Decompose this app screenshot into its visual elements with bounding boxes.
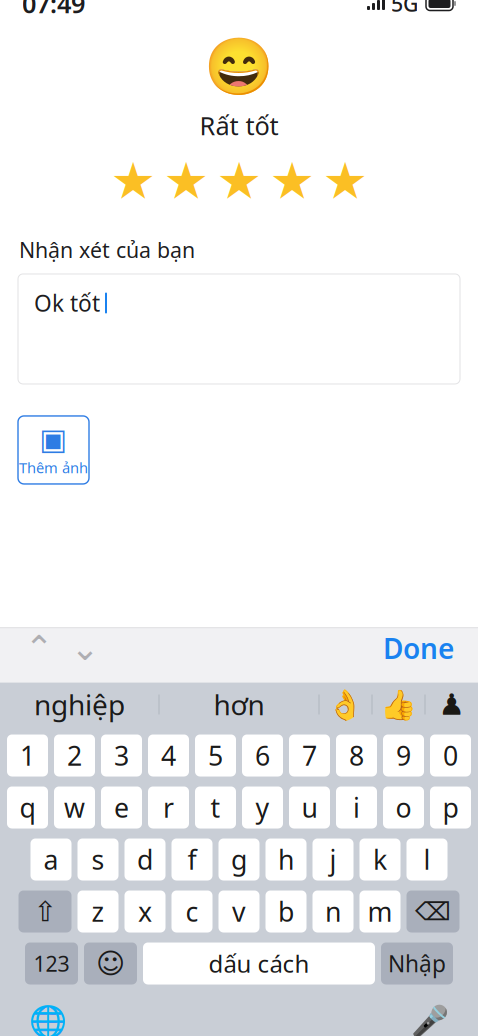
button[interactable]: k [359, 838, 400, 880]
button[interactable]: 👌 [319, 682, 371, 726]
button[interactable]: f [171, 838, 212, 880]
button[interactable]: 123 [25, 942, 78, 984]
button[interactable]: hơn [159, 682, 318, 726]
staticText: Thêm ảnh [19, 458, 88, 477]
button[interactable]: 0 [430, 734, 471, 776]
button[interactable]: q [7, 786, 48, 828]
staticText: 5 [208, 738, 223, 773]
button[interactable]: 8 [336, 734, 377, 776]
button[interactable]: j [312, 838, 353, 880]
staticText: Rất tốt [199, 108, 278, 142]
staticText: j [329, 842, 336, 877]
staticText: z [91, 894, 104, 929]
staticText: q [19, 790, 35, 825]
staticText: 5G [391, 0, 419, 18]
staticText: m [367, 894, 392, 929]
button[interactable]: 7 [289, 734, 330, 776]
staticText: ♟ [438, 688, 464, 721]
button[interactable]: Dictation [408, 1001, 452, 1036]
staticText: y [255, 790, 269, 825]
button[interactable]: 5 [195, 734, 236, 776]
button[interactable]: b [265, 890, 306, 932]
button[interactable]: 2 [54, 734, 95, 776]
staticText: v [232, 894, 246, 929]
staticText: 6 [255, 738, 270, 773]
staticText: x [138, 894, 152, 929]
button[interactable]: ▣ [18, 416, 89, 484]
button[interactable]: Nhập [381, 942, 453, 984]
button[interactable]: 4 [148, 734, 189, 776]
staticText: 7 [302, 738, 317, 773]
button[interactable]: n [312, 890, 353, 932]
staticText: ⌄ [70, 628, 99, 668]
staticText: ⌫ [415, 897, 451, 926]
button[interactable]: Change keyboard [26, 1001, 70, 1036]
staticText: dấu cách [208, 948, 309, 979]
button[interactable]: r [148, 786, 189, 828]
button[interactable]: 6 [242, 734, 283, 776]
staticText: r [163, 790, 174, 825]
button[interactable]: d [124, 838, 165, 880]
button[interactable]: l [406, 838, 447, 880]
staticText: 😄 [204, 34, 274, 98]
button[interactable]: 1 [7, 734, 48, 776]
staticText: l [423, 842, 430, 877]
button[interactable]: dấu cách [143, 942, 375, 984]
staticText: 1 [20, 738, 35, 773]
staticText: ★ [110, 152, 155, 210]
button[interactable]: 👍 [372, 682, 424, 726]
button[interactable]: s [77, 838, 118, 880]
staticText: 4 [161, 738, 176, 773]
staticText: p [442, 790, 458, 825]
staticText: Done [383, 629, 454, 667]
staticText: 3 [114, 738, 129, 773]
button[interactable]: ⇧ [18, 890, 71, 932]
button[interactable]: g [218, 838, 259, 880]
button[interactable]: ⌫ [406, 890, 459, 932]
button[interactable]: x [124, 890, 165, 932]
button[interactable]: y [242, 786, 283, 828]
button[interactable]: p [430, 786, 471, 828]
staticText: 👍 [380, 688, 417, 721]
staticText: h [278, 842, 294, 877]
staticText: b [278, 894, 294, 929]
staticText: ★ [163, 152, 208, 210]
button[interactable]: a [30, 838, 71, 880]
staticText: Ok tốt [34, 288, 100, 318]
button[interactable]: v [218, 890, 259, 932]
button[interactable]: Done [375, 628, 462, 668]
staticText: u [301, 790, 317, 825]
button[interactable]: c [171, 890, 212, 932]
button[interactable]: e [101, 786, 142, 828]
staticText: i [353, 790, 360, 825]
staticText: ⌃ [24, 628, 53, 668]
button[interactable]: m [359, 890, 400, 932]
button[interactable]: i [336, 786, 377, 828]
staticText: 🎤 [411, 1004, 449, 1036]
staticText: a [43, 842, 58, 877]
button[interactable]: 3 [101, 734, 142, 776]
button[interactable]: z [77, 890, 118, 932]
staticText: ★ [322, 152, 367, 210]
button[interactable]: Next field [62, 628, 108, 668]
staticText: hơn [213, 686, 264, 723]
staticText: 🌐 [29, 1004, 67, 1036]
staticText: w [64, 790, 85, 825]
staticText: c [185, 894, 198, 929]
button[interactable]: nghiệp [0, 682, 158, 726]
staticText: ▣ [39, 423, 67, 456]
button[interactable]: u [289, 786, 330, 828]
staticText: t [210, 790, 220, 825]
button[interactable]: h [265, 838, 306, 880]
staticText: 123 [33, 949, 69, 978]
button[interactable]: t [195, 786, 236, 828]
staticText: Nhận xét của bạn [19, 236, 195, 264]
button[interactable]: o [383, 786, 424, 828]
button[interactable]: w [54, 786, 95, 828]
staticText: 07:49 [22, 0, 85, 20]
button[interactable]: ♟ [425, 682, 477, 726]
button[interactable]: ☺ [84, 942, 137, 984]
button[interactable]: 9 [383, 734, 424, 776]
button[interactable]: Previous field [16, 628, 62, 668]
staticText: 0 [443, 738, 458, 773]
